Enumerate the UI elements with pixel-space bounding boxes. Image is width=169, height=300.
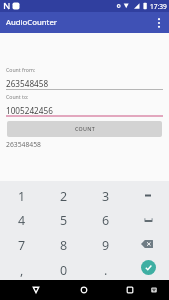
staticText: Count from:: [6, 66, 36, 73]
button[interactable]: 4: [0, 205, 43, 230]
staticText: .: [104, 262, 108, 279]
button[interactable]: 5: [43, 205, 85, 230]
staticText: 9: [102, 237, 110, 254]
staticText: 6: [102, 212, 110, 229]
button[interactable]: 3: [85, 181, 127, 205]
button[interactable]: Space: [127, 205, 169, 230]
button[interactable]: Back: [26, 280, 46, 300]
staticText: 0: [60, 262, 68, 279]
staticText: 1: [18, 188, 26, 205]
button[interactable]: Minus: [127, 181, 169, 205]
button[interactable]: 7: [0, 230, 43, 255]
staticText: ,: [20, 262, 24, 279]
other: Backspace: [141, 240, 153, 248]
button[interactable]: Enter: [127, 255, 169, 280]
other: Minus: [145, 194, 151, 197]
staticText: 7: [18, 237, 26, 254]
staticText: 5: [60, 212, 68, 229]
staticText: 3: [102, 188, 110, 205]
button[interactable]: ,: [0, 255, 43, 280]
staticText: Count to:: [6, 93, 29, 100]
staticText: COUNT: [75, 125, 95, 132]
button[interactable]: 0: [43, 255, 85, 280]
staticText: 4: [18, 212, 26, 229]
staticText: 1005242456: [6, 105, 53, 116]
staticText: 2: [60, 188, 68, 205]
staticText: AudioCounter: [6, 17, 58, 28]
button[interactable]: Switch keyboard: [144, 280, 164, 300]
button[interactable]: 9: [85, 230, 127, 255]
staticText: 263548458: [6, 140, 41, 149]
button[interactable]: 6: [85, 205, 127, 230]
other: Space: [144, 217, 153, 222]
button[interactable]: Backspace: [127, 230, 169, 255]
button[interactable]: 2: [43, 181, 85, 205]
staticText: 17:39: [150, 2, 167, 11]
button[interactable]: Recents: [120, 280, 140, 300]
button[interactable]: More options: [149, 12, 169, 33]
button[interactable]: COUNT: [7, 121, 162, 137]
button[interactable]: 1: [0, 181, 43, 205]
staticText: 8: [60, 237, 68, 254]
button[interactable]: .: [85, 255, 127, 280]
other: Enter: [141, 260, 156, 275]
button[interactable]: 8: [43, 230, 85, 255]
staticText: 263548458: [6, 78, 49, 89]
button[interactable]: Home: [74, 280, 94, 300]
